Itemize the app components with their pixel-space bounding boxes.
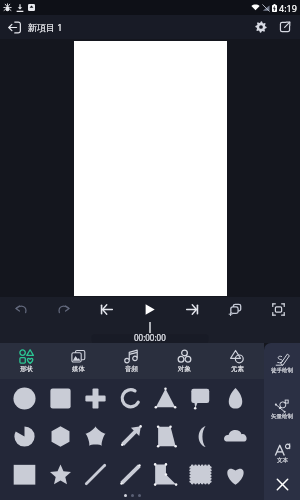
button[interactable]: Speech bubble xyxy=(183,379,218,417)
button[interactable]: Trapezoid xyxy=(148,417,183,455)
button[interactable]: Settings xyxy=(249,15,273,39)
button[interactable]: Back xyxy=(0,15,28,39)
button[interactable]: 徒手绘制 xyxy=(264,352,300,374)
button[interactable]: Flower xyxy=(78,417,113,455)
button[interactable]: Loop xyxy=(214,297,257,321)
staticText: 对象 xyxy=(178,365,191,373)
button[interactable]: Thick line xyxy=(113,455,148,493)
button[interactable]: Rectangle xyxy=(6,455,42,493)
staticText: 新項目 1 xyxy=(28,21,63,33)
button[interactable]: 元素 xyxy=(211,343,264,379)
button[interactable]: 媒体 xyxy=(52,343,105,379)
button[interactable]: Plus xyxy=(78,379,113,417)
button[interactable]: Hexagon xyxy=(42,417,78,455)
button[interactable]: Cloud xyxy=(218,417,253,455)
button[interactable]: Skip to start xyxy=(85,297,128,321)
staticText: 徒手绘制 xyxy=(271,367,293,374)
button[interactable]: Square xyxy=(42,379,78,417)
staticText: 元素 xyxy=(231,365,244,373)
button[interactable]: 文本 xyxy=(264,442,300,464)
button[interactable]: Export xyxy=(273,15,297,39)
staticText: 形状 xyxy=(20,365,33,373)
staticText: 4:19 xyxy=(279,2,297,14)
button[interactable]: Undo xyxy=(0,297,42,321)
button[interactable]: Star xyxy=(42,455,78,493)
button[interactable]: Crescent xyxy=(183,417,218,455)
button[interactable]: Stamp xyxy=(183,455,218,493)
staticText: 文本 xyxy=(277,457,288,464)
button[interactable]: Redo xyxy=(42,297,85,321)
button[interactable]: Fit to screen xyxy=(257,297,300,321)
button[interactable]: 矢量绘制 xyxy=(264,398,300,420)
button[interactable]: Circle xyxy=(6,379,42,417)
button[interactable]: Triangle xyxy=(148,379,183,417)
button[interactable]: Play xyxy=(128,297,171,321)
button[interactable]: Pie xyxy=(6,417,42,455)
button[interactable]: Close xyxy=(269,471,295,497)
button[interactable]: Line xyxy=(78,455,113,493)
button[interactable]: Arrow xyxy=(113,417,148,455)
button[interactable]: Arc xyxy=(113,379,148,417)
button[interactable]: 音頻 xyxy=(105,343,158,379)
button[interactable]: Skip to end xyxy=(171,297,214,321)
staticText: 矢量绘制 xyxy=(271,413,293,420)
button[interactable]: Polygon xyxy=(148,455,183,493)
button[interactable]: Heart xyxy=(218,455,253,493)
button[interactable]: 对象 xyxy=(158,343,211,379)
button[interactable]: Droplet xyxy=(218,379,253,417)
staticText: 媒体 xyxy=(72,365,85,373)
staticText: 00:00:00 xyxy=(134,332,166,343)
staticText: 音頻 xyxy=(125,365,138,373)
button[interactable]: 形状 xyxy=(0,343,52,379)
